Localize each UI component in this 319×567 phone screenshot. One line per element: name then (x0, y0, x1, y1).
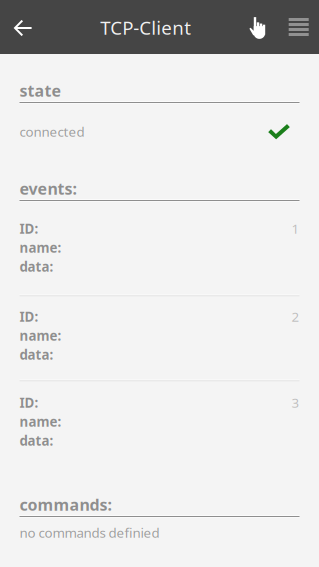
button[interactable]: Toggle touch control (238, 0, 278, 54)
button[interactable]: Back (0, 0, 45, 54)
staticText: commands: (19, 494, 111, 515)
button[interactable]: Menu (278, 0, 319, 54)
staticText: ID: (19, 394, 38, 411)
staticText: name: (19, 327, 61, 344)
staticText: events: (19, 178, 76, 199)
staticText: no commands definied (19, 524, 159, 541)
staticText: name: (19, 413, 61, 430)
staticText: ID: (19, 308, 38, 325)
staticText: data: (19, 432, 53, 449)
staticText: data: (19, 346, 53, 363)
staticText: 2 (291, 308, 299, 325)
staticText: TCP-Client (100, 15, 191, 40)
staticText: name: (19, 239, 61, 256)
staticText: state (19, 80, 61, 101)
staticText: 1 (291, 220, 299, 237)
staticText: ID: (19, 220, 38, 237)
staticText: 3 (291, 394, 299, 411)
staticText: connected (19, 123, 84, 140)
staticText: data: (19, 258, 53, 275)
